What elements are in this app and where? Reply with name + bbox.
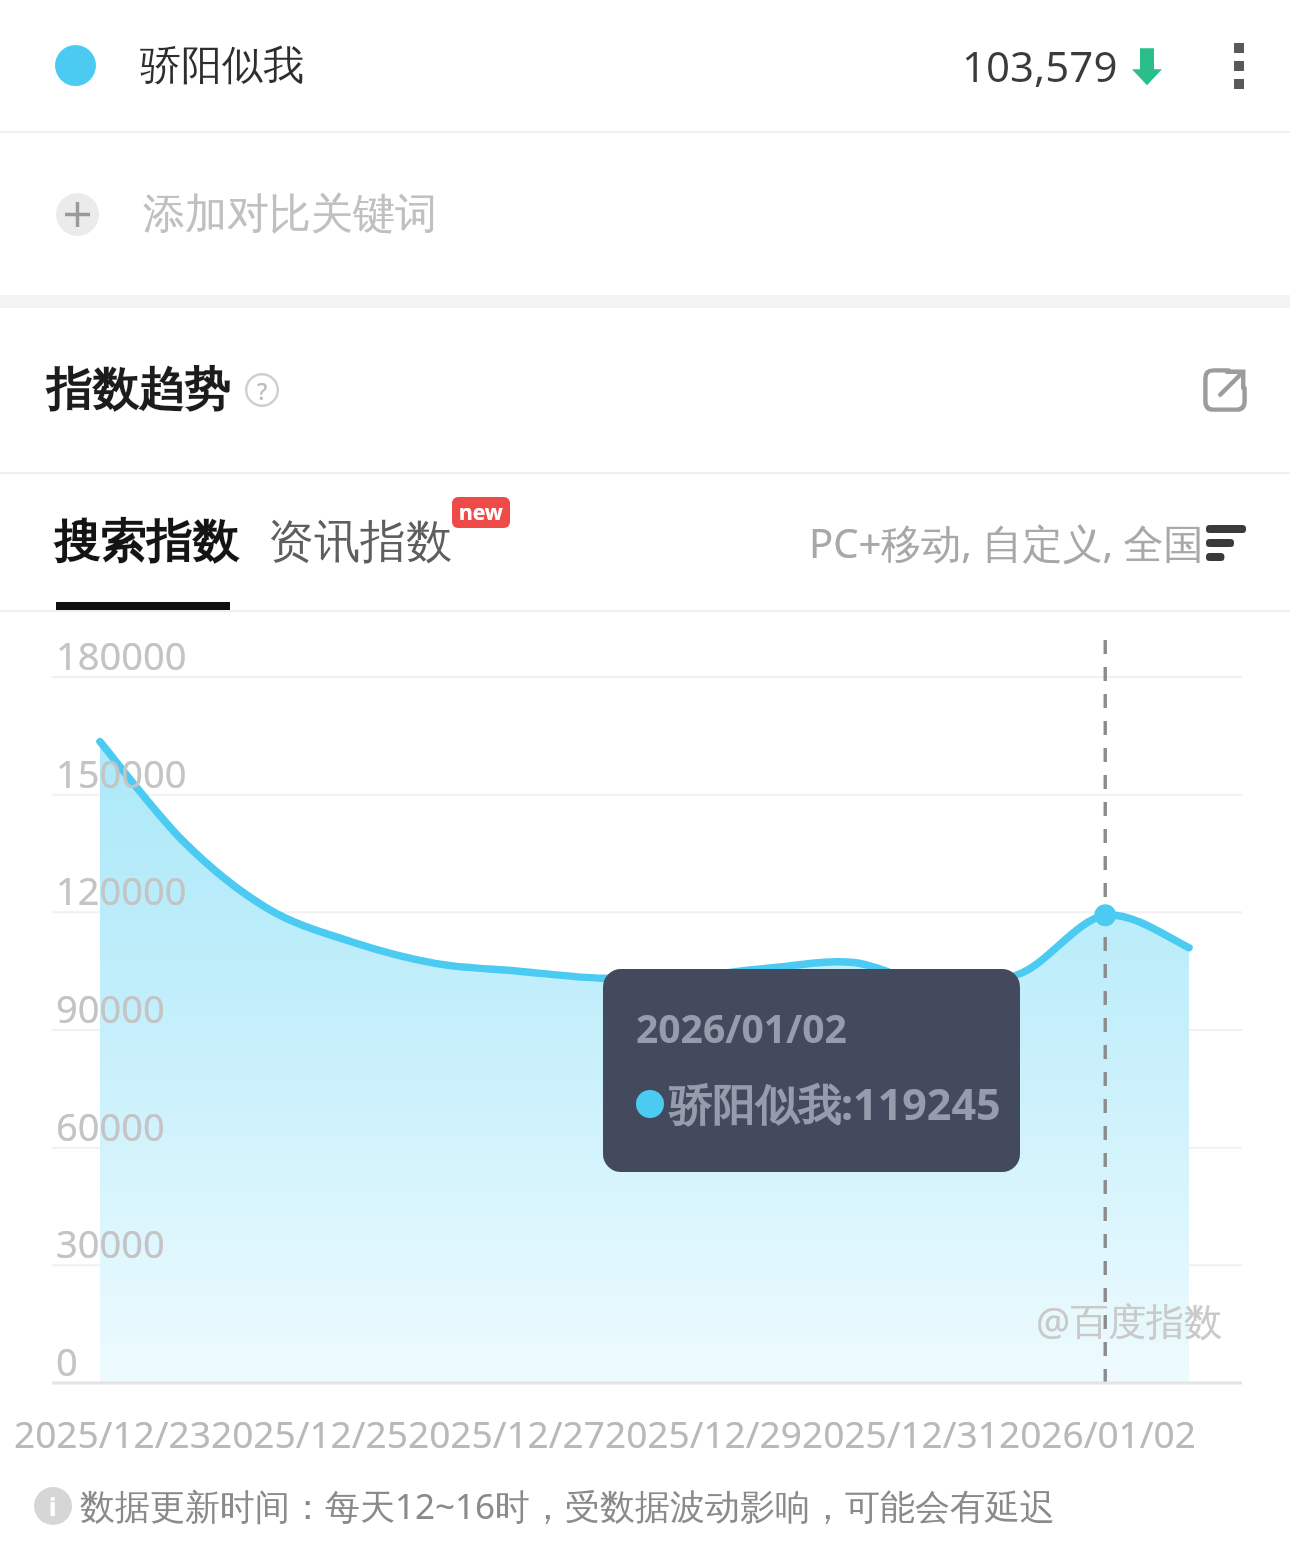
staticText: 骄阳似我:119245 — [669, 1074, 1001, 1133]
staticText: 2026/01/02 — [636, 1001, 847, 1054]
button[interactable]: Open full report — [1180, 345, 1270, 435]
button[interactable]: 资讯指数 — [262, 495, 516, 589]
staticText: 2025/12/31 — [802, 1408, 999, 1458]
staticText: 骄阳似我 — [140, 40, 304, 92]
staticText: 0 — [56, 1335, 78, 1387]
staticText: 90000 — [56, 982, 165, 1034]
button[interactable]: 搜索指数 — [48, 495, 244, 589]
staticText: 180000 — [56, 629, 187, 681]
staticText: @百度指数 — [1036, 1294, 1223, 1346]
staticText: 103,579 — [962, 37, 1118, 94]
button[interactable]: 添加对比关键词 — [0, 133, 1290, 295]
staticText: 2026/01/02 — [999, 1408, 1196, 1458]
staticText: 数据更新时间：每天12~16时，受数据波动影响，可能会有延迟 — [80, 1482, 1056, 1530]
staticText: PC+移动, 自定义, 全国 — [809, 515, 1204, 570]
staticText: 资讯指数 — [268, 513, 452, 571]
staticText: ? — [257, 375, 268, 406]
staticText: 2025/12/23 — [14, 1408, 211, 1458]
staticText: 60000 — [56, 1100, 165, 1152]
staticText: 添加对比关键词 — [143, 188, 437, 241]
staticText: 2025/12/29 — [605, 1408, 802, 1458]
staticText: 120000 — [56, 864, 187, 916]
staticText: 150000 — [56, 747, 187, 799]
button[interactable]: PC+移动, 自定义, 全国 — [809, 505, 1290, 580]
staticText: new — [459, 498, 503, 527]
staticText: 2025/12/27 — [408, 1408, 605, 1458]
button[interactable]: More options — [1202, 29, 1276, 103]
staticText: i — [49, 1489, 57, 1523]
button[interactable]: Help — [242, 370, 282, 410]
staticText: 2025/12/25 — [211, 1408, 408, 1458]
staticText: 搜索指数 — [54, 513, 238, 571]
staticText: 30000 — [56, 1217, 165, 1269]
button[interactable]: 骄阳似我 — [0, 0, 1290, 131]
staticText: 指数趋势 — [46, 361, 230, 419]
